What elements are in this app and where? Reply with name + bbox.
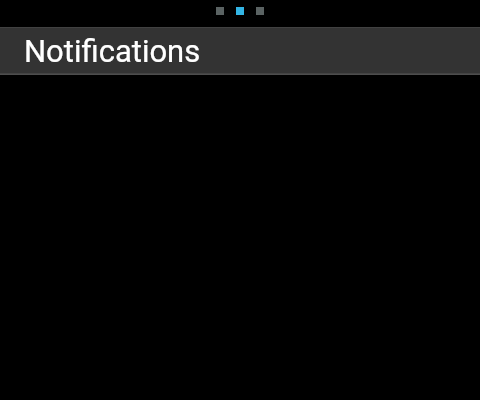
button[interactable]: Notifications <box>0 27 480 75</box>
staticText: Notifications <box>24 33 201 69</box>
